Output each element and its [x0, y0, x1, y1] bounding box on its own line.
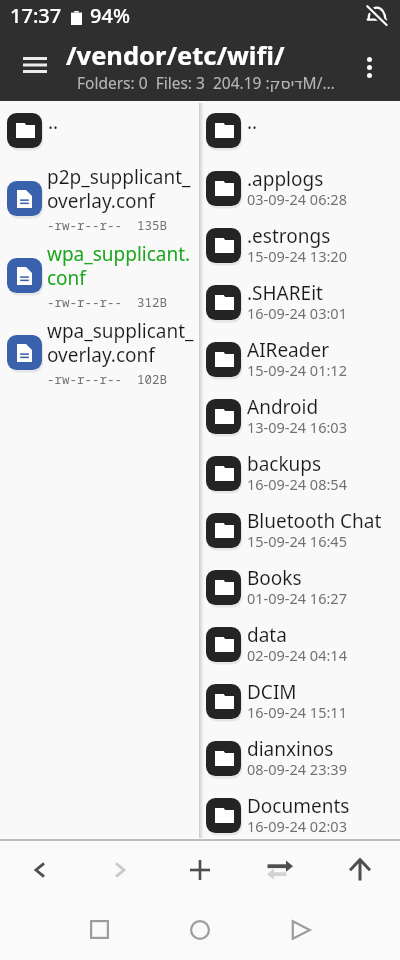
- staticText: 16-09-24 03:01: [247, 303, 347, 323]
- button[interactable]: Up: [320, 840, 400, 899]
- staticText: 01-09-24 16:27: [247, 588, 347, 608]
- staticText: p2p_supplicant_ overlay.conf: [47, 164, 191, 213]
- staticText: 94%: [90, 2, 130, 29]
- staticText: 03-09-24 06:28: [247, 189, 347, 209]
- staticText: AIReader: [247, 337, 330, 363]
- button[interactable]: Back: [274, 899, 325, 960]
- staticText: 13-09-24 16:03: [247, 417, 347, 437]
- button[interactable]: Menu: [0, 38, 67, 101]
- button[interactable]: AIReader: [199, 331, 400, 388]
- staticText: 02-09-24 04:14: [247, 645, 347, 665]
- staticText: .SHAREit: [247, 280, 323, 306]
- button[interactable]: backups: [199, 445, 400, 502]
- staticText: 16-09-24 15:11: [247, 702, 347, 722]
- button[interactable]: data: [199, 616, 400, 673]
- staticText: -rw-r--r-- 312B: [47, 294, 168, 311]
- button[interactable]: Recent apps: [74, 899, 125, 960]
- button[interactable]: Android: [199, 388, 400, 445]
- button[interactable]: Swap panes: [240, 840, 320, 899]
- staticText: -rw-r--r-- 135B: [47, 217, 168, 234]
- staticText: -rw-r--r-- 102B: [47, 371, 168, 388]
- staticText: 16-09-24 02:03: [247, 816, 347, 836]
- button[interactable]: DCIM: [199, 673, 400, 730]
- staticText: 17:37: [10, 2, 62, 29]
- button[interactable]: Bluetooth Chat: [199, 502, 400, 559]
- staticText: 15-09-24 16:45: [247, 531, 347, 551]
- staticText: wpa_supplicant. conf: [47, 241, 191, 290]
- staticText: Folders: 0 Files: 3 204.19 :דיסקM/…: [77, 72, 347, 93]
- button[interactable]: wpa_supplicant_ overlay.conf: [0, 327, 199, 404]
- staticText: 15-09-24 13:20: [247, 246, 347, 266]
- staticText: dianxinos: [247, 736, 334, 762]
- staticText: 16-09-24 08:54: [247, 474, 347, 494]
- staticText: Android: [247, 394, 319, 420]
- staticText: Bluetooth Chat: [247, 508, 382, 534]
- button[interactable]: Home: [174, 899, 225, 960]
- staticText: 08-09-24 23:39: [247, 759, 347, 779]
- button[interactable]: .applogs: [199, 160, 400, 217]
- button[interactable]: dianxinos: [199, 730, 400, 787]
- staticText: Books: [247, 565, 302, 591]
- button[interactable]: .SHAREit: [199, 274, 400, 331]
- button[interactable]: Forward: [80, 840, 160, 899]
- button[interactable]: p2p_supplicant_ overlay.conf: [0, 173, 199, 250]
- staticText: ..: [48, 109, 59, 135]
- staticText: /vendor/etc/wifi/: [66, 38, 351, 73]
- staticText: DCIM: [247, 679, 297, 705]
- button[interactable]: Notifications off: [360, 0, 392, 32]
- staticText: wpa_supplicant_ overlay.conf: [47, 318, 194, 367]
- staticText: backups: [247, 451, 322, 477]
- button[interactable]: Documents: [199, 787, 400, 839]
- staticText: .applogs: [247, 166, 324, 192]
- button[interactable]: Back: [0, 840, 80, 899]
- button[interactable]: Books: [199, 559, 400, 616]
- staticText: data: [247, 622, 287, 648]
- button[interactable]: ..: [199, 103, 400, 158]
- staticText: 15-09-24 01:12: [247, 360, 347, 380]
- button[interactable]: More options: [344, 38, 400, 101]
- staticText: ..: [247, 109, 258, 135]
- staticText: Documents: [247, 793, 350, 819]
- staticText: .estrongs: [247, 223, 331, 249]
- button[interactable]: ..: [0, 103, 199, 158]
- button[interactable]: .estrongs: [199, 217, 400, 274]
- button[interactable]: wpa_supplicant. conf: [0, 250, 199, 327]
- button[interactable]: New: [160, 840, 240, 899]
